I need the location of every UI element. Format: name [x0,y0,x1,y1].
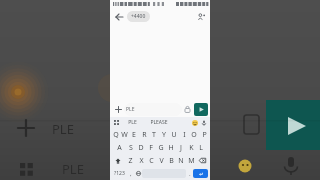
button[interactable]: Shift [111,154,125,167]
staticText: PLEASE [150,119,168,126]
staticText: Z [128,156,133,166]
button[interactable]: S [125,141,136,154]
button[interactable]: . [186,169,193,178]
staticText: J [180,143,182,153]
button[interactable]: ?123 [112,169,127,178]
staticText: N [178,156,184,166]
button[interactable]: T [149,128,159,141]
button[interactable]: P [199,128,209,141]
staticText: T [152,130,156,140]
button[interactable]: I [179,128,189,141]
staticText: U [171,130,177,140]
button[interactable]: X [136,154,146,167]
button[interactable]: V [156,154,166,167]
staticText: P [202,130,207,140]
staticText: PLE [128,119,137,126]
staticText: X [139,156,144,166]
button[interactable]: B [166,154,176,167]
button[interactable]: Voice input [199,118,208,127]
staticText: +4400 [131,13,146,20]
button[interactable]: N [176,154,186,167]
button[interactable]: Send [194,103,208,116]
staticText: D [138,143,144,153]
button[interactable]: W [120,128,129,141]
button[interactable]: Add attachment [112,103,124,115]
staticText: G [158,143,164,153]
staticText: PLE [62,160,84,178]
staticText: PLE [126,106,135,113]
button[interactable]: O [189,128,199,141]
button[interactable]: Send [193,169,208,178]
button[interactable]: PLE [121,117,144,128]
staticText: K [189,143,194,153]
staticText: R [142,130,147,140]
button[interactable]: PLE [124,103,182,116]
button[interactable]: Y [159,128,169,141]
button[interactable]: G [156,141,166,154]
button[interactable]: Back [113,11,125,23]
staticText: , [130,170,132,178]
button[interactable]: Toolbar [112,118,121,127]
staticText: ?123 [114,170,125,177]
button[interactable]: H [166,141,176,154]
button[interactable]: Z [125,154,136,167]
staticText: Q [113,130,119,140]
button[interactable]: D [136,141,146,154]
button[interactable]: A [114,141,125,154]
staticText: A [117,143,122,153]
staticText: S [129,143,133,153]
staticText: M [188,156,195,166]
staticText: PLE [52,120,74,138]
staticText: Y [162,130,166,140]
staticText: O [191,130,197,140]
staticText: W [121,130,128,140]
staticText: E [132,130,136,140]
button[interactable]: R [139,128,149,141]
button[interactable]: C [146,154,156,167]
button[interactable]: Add contact [195,11,207,23]
button[interactable]: U [169,128,179,141]
staticText: I [183,130,186,140]
button[interactable]: , [127,169,134,178]
button[interactable]: Change language [134,169,142,178]
button[interactable]: Q [111,128,120,141]
button[interactable]: E [129,128,139,141]
button[interactable]: K [186,141,196,154]
staticText: C [149,156,154,166]
button[interactable]: +4400 [127,11,150,22]
button[interactable]: L [196,141,206,154]
button[interactable]: Emoji [190,118,199,127]
staticText: V [159,156,164,166]
staticText: B [169,156,174,166]
staticText: . [189,170,191,178]
button[interactable]: Stickers [182,104,193,115]
staticText: H [168,143,174,153]
staticText: F [149,143,153,153]
button[interactable]: F [146,141,156,154]
button[interactable]: M [186,154,196,167]
button[interactable]: J [176,141,186,154]
button[interactable]: Backspace [196,154,209,167]
button[interactable]: PLEASE [144,117,174,128]
staticText: L [199,143,203,153]
